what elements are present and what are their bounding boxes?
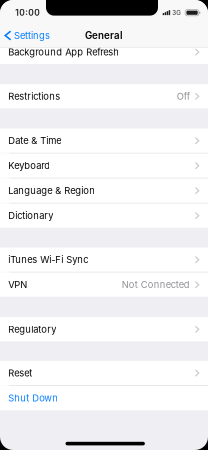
button[interactable]: Language & Region [0,178,208,203]
staticText: General [85,30,123,41]
staticText: 10:00 [15,8,40,18]
button[interactable]: Keyboard [0,153,208,178]
staticText: 3G [172,9,181,16]
button[interactable]: Background App Refresh [0,40,208,64]
button[interactable]: Restrictions [0,84,208,108]
staticText: Restrictions [8,91,60,102]
staticText: Language & Region [8,185,95,196]
staticText: Background App Refresh [8,46,119,58]
staticText: Keyboard [8,160,50,171]
button[interactable]: Date & Time [0,128,208,153]
button[interactable]: iTunes Wi-Fi Sync [0,247,208,272]
button[interactable]: Dictionary [0,203,208,228]
staticText: VPN [8,279,27,290]
staticText: Date & Time [8,135,61,146]
staticText: Shut Down [8,392,58,404]
button[interactable]: Reset [0,361,208,385]
button[interactable]: Regulatory [0,317,208,341]
button[interactable]: VPN [0,272,208,297]
staticText: Settings [14,30,50,41]
staticText: Dictionary [8,210,53,221]
staticText: Reset [8,367,32,379]
staticText: Not Connected [122,279,190,290]
staticText: Off [177,91,190,102]
button[interactable]: Settings [0,24,56,46]
staticText: Regulatory [8,324,56,335]
button[interactable]: Shut Down [0,386,208,410]
staticText: iTunes Wi-Fi Sync [8,254,88,265]
